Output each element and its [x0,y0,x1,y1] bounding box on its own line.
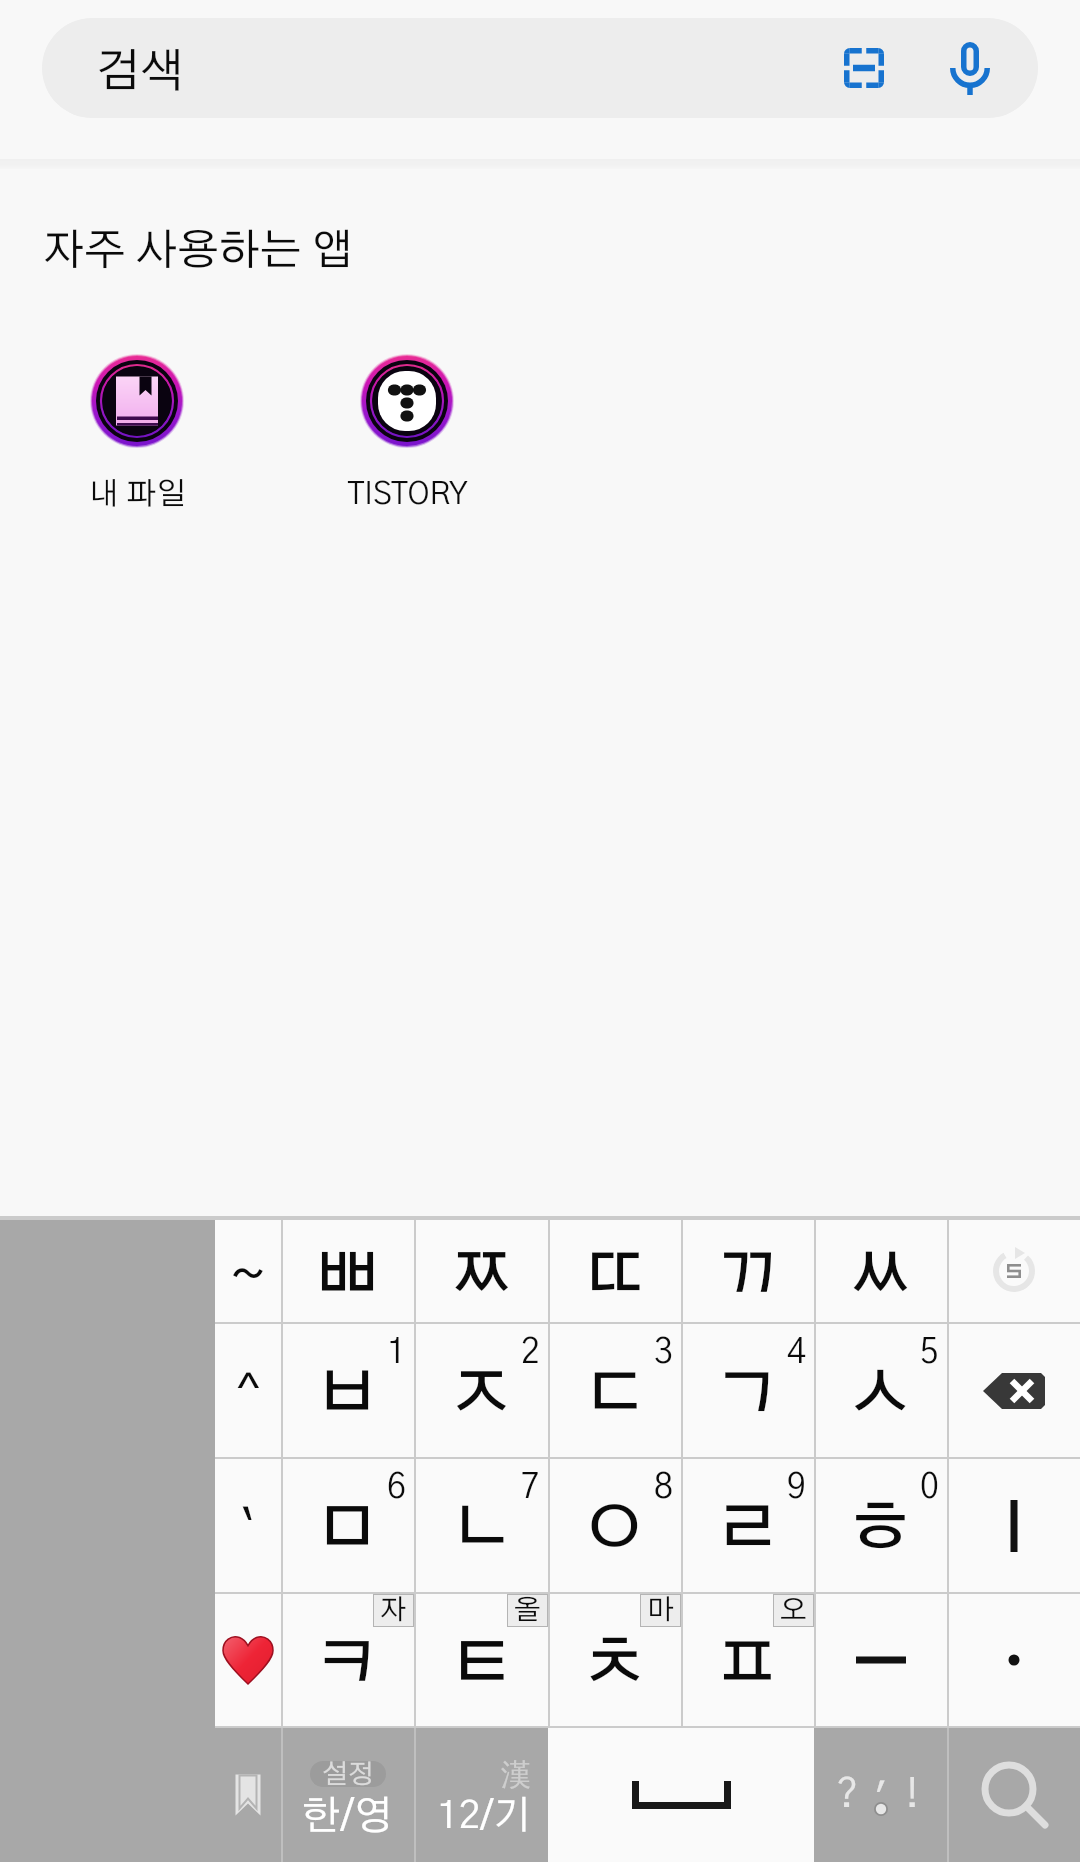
button[interactable]: ` [215,1459,281,1592]
button[interactable]: Vowel eu [814,1594,947,1726]
staticText: ! [906,1775,919,1815]
staticText: TISTORY [347,479,468,510]
staticText: 3 [654,1336,673,1370]
staticText: 오 [780,1597,807,1625]
button[interactable]: ^ [215,1324,281,1457]
button[interactable]: ㄷ [548,1324,681,1457]
staticText: 내 파일 [89,479,186,510]
staticText: ㅎ [847,1497,914,1564]
button[interactable]: ㅇ [548,1459,681,1592]
staticText: ㅃ [314,1243,381,1310]
staticText: 자주 사용하는 앱 [43,230,354,273]
staticText: 12/기 [437,1797,531,1836]
button[interactable]: ㅅ [814,1324,947,1457]
staticText: ㄱ [714,1362,781,1429]
button[interactable]: ㅌ [414,1594,548,1726]
button[interactable]: ㅊ [548,1594,681,1726]
staticText: ㅇ [581,1497,648,1564]
button[interactable]: Space [548,1728,814,1862]
button[interactable]: ㅋ [281,1594,414,1726]
button[interactable]: Undo [947,1220,1080,1322]
staticText: 8 [654,1471,673,1505]
staticText: ㅉ [448,1243,515,1310]
button[interactable]: Search [947,1728,1080,1862]
button[interactable]: ㄱ [681,1324,814,1457]
staticText: ㅊ [581,1632,648,1699]
staticText: ㅅ [847,1362,914,1429]
staticText: ㄷ [581,1362,648,1429]
button[interactable]: Scan code [814,18,914,118]
staticText: 4 [787,1336,806,1370]
staticText: ㅁ [314,1497,381,1564]
staticText: 0 [920,1471,939,1505]
button[interactable]: ㅉ [414,1220,548,1322]
staticText: 한/영 [302,1797,393,1837]
staticText: , [875,1753,889,1793]
staticText: 검색 [96,49,185,95]
staticText: 5 [920,1336,939,1370]
staticText: 6 [387,1471,406,1505]
staticText: ㄴ [448,1497,515,1564]
button[interactable]: ㅈ [414,1324,548,1457]
staticText: ^ [237,1374,260,1418]
button[interactable]: ㅆ [814,1220,947,1322]
button[interactable]: Vowel dot [947,1594,1080,1726]
button[interactable]: ㄸ [548,1220,681,1322]
button[interactable]: ㄹ [681,1459,814,1592]
staticText: ㅍ [714,1632,781,1699]
button[interactable]: 내 파일 [2,345,272,510]
staticText: ㅆ [847,1243,914,1310]
button[interactable]: Vowel i [947,1459,1080,1592]
button[interactable]: 漢 [414,1728,548,1862]
staticText: 7 [521,1471,540,1505]
button[interactable]: ㅍ [681,1594,814,1726]
staticText: ㄹ [714,1497,781,1564]
staticText: 漢 [501,1756,531,1794]
button[interactable]: ㅁ [281,1459,414,1592]
button[interactable]: Backspace [947,1324,1080,1457]
button[interactable]: 설정 [281,1728,414,1862]
button[interactable]: 검색 [42,18,1038,118]
button[interactable]: Emoji [215,1594,281,1726]
button[interactable]: ㅃ [281,1220,414,1322]
button[interactable]: Punctuation [814,1728,947,1862]
button[interactable]: ㄴ [414,1459,548,1592]
staticText: ㅌ [448,1632,515,1699]
staticText: 9 [787,1471,806,1505]
button[interactable]: ㄲ [681,1220,814,1322]
staticText: ㄲ [714,1243,781,1310]
staticText: 올 [514,1597,541,1625]
staticText: 2 [521,1336,540,1370]
staticText: ~ [230,1253,266,1299]
button[interactable]: Clipboard [215,1728,281,1862]
staticText: ㅂ [314,1362,381,1429]
button[interactable]: ~ [215,1220,281,1322]
button[interactable]: TISTORY [272,345,542,510]
staticText: 1 [387,1336,406,1370]
button[interactable]: ㅂ [281,1324,414,1457]
staticText: 설정 [322,1761,374,1787]
staticText: 자 [380,1597,407,1625]
button[interactable]: ㅎ [814,1459,947,1592]
staticText: ` [241,1509,256,1553]
button[interactable]: Voice search [920,18,1020,118]
staticText: ? [836,1775,859,1815]
staticText: ㅈ [448,1362,515,1429]
staticText: 마 [647,1597,674,1625]
staticText: ㄸ [581,1243,648,1310]
staticText: ㅋ [314,1632,381,1699]
